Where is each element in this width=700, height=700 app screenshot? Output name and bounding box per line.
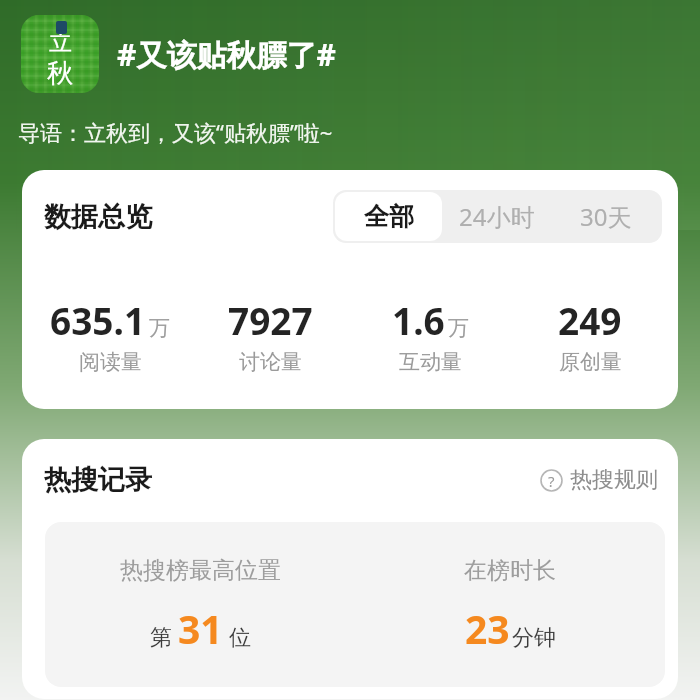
button[interactable]: 立秋 话题图标 (21, 15, 99, 93)
staticText: 讨论量 (239, 349, 302, 375)
staticText: 热搜记录 (44, 463, 152, 497)
button[interactable]: 7927 (190, 295, 350, 375)
button[interactable]: 热搜榜最高位置 (45, 522, 355, 655)
staticText: 全部 (364, 201, 414, 232)
staticText: 在榜时长 (464, 556, 556, 585)
button[interactable]: 1.6 (350, 295, 510, 375)
staticText: 7927 (228, 295, 313, 345)
staticText: 第 (150, 624, 172, 652)
staticText: 635.1 (50, 295, 146, 345)
button[interactable]: 24小时 (444, 190, 549, 243)
staticText: ? (548, 471, 555, 491)
button[interactable]: 249 (510, 295, 670, 375)
staticText: 原创量 (559, 349, 622, 375)
staticText: 万 (448, 315, 469, 341)
staticText: 31 (178, 602, 223, 655)
staticText: 249 (558, 295, 622, 345)
staticText: 导语：立秋到，又该“贴秋膘”啦~ (18, 117, 333, 147)
button[interactable]: 热搜规则说明 (540, 466, 658, 494)
button[interactable]: 全部 (335, 192, 442, 241)
staticText: 30天 (580, 200, 632, 233)
staticText: 1.6 (392, 295, 445, 345)
staticText: 热搜榜最高位置 (120, 556, 281, 585)
button[interactable]: 30天 (549, 190, 662, 243)
button[interactable]: 在榜时长 (355, 522, 665, 655)
staticText: 互动量 (399, 349, 462, 375)
staticText: 秋 (47, 57, 73, 90)
other: 热搜规则说明 (540, 469, 563, 492)
staticText: 立 (49, 28, 72, 57)
button[interactable]: 635.1 (30, 295, 190, 375)
staticText: 分钟 (512, 624, 556, 652)
staticText: 位 (229, 624, 251, 652)
staticText: 24小时 (459, 200, 535, 233)
staticText: 阅读量 (79, 349, 142, 375)
staticText: 热搜规则 (570, 466, 658, 494)
staticText: 万 (149, 315, 170, 341)
staticText: 数据总览 (44, 200, 152, 234)
staticText: 23 (465, 602, 510, 655)
staticText: #又该贴秋膘了# (117, 34, 336, 75)
